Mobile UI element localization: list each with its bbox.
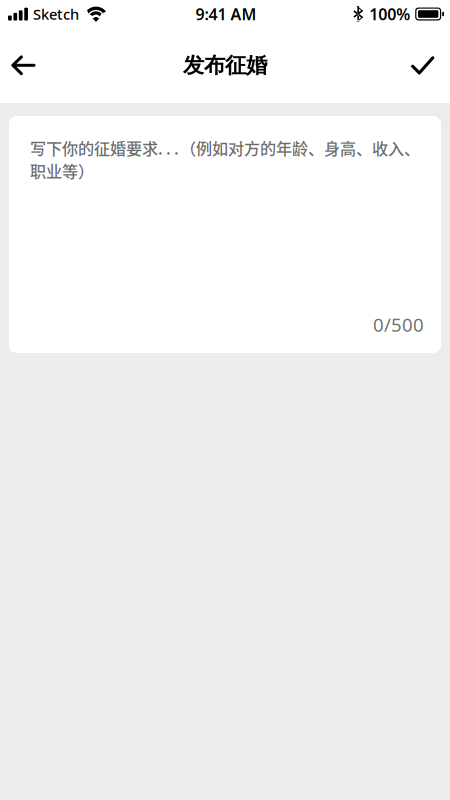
staticText: Sketch (33, 4, 79, 24)
button[interactable]: Back (0, 41, 49, 89)
staticText: 100% (369, 3, 410, 25)
staticText: 9:41 AM (195, 3, 256, 25)
staticText: 0/500 (373, 312, 424, 337)
staticText: 发布征婚 (183, 52, 267, 79)
staticText: 写下你的征婚要求. . . （例如对方的年龄、身高、收入、职业等） (30, 136, 420, 182)
button[interactable]: Done (397, 42, 450, 89)
